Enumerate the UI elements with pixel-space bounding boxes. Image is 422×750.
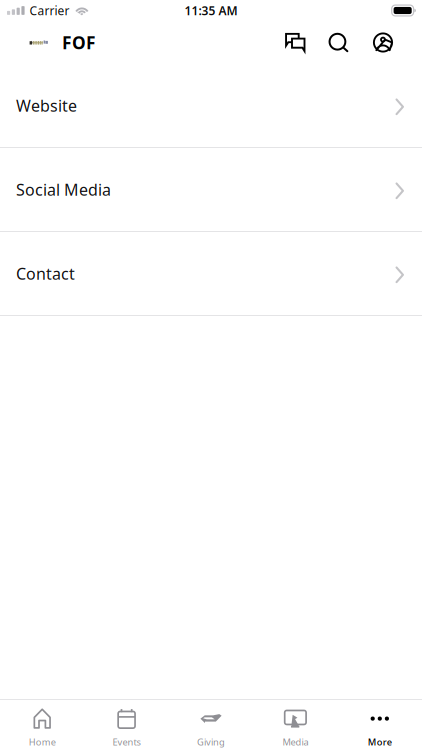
staticText: Events [113,736,141,748]
staticText: Carrier [29,2,69,18]
staticText: 11:35 AM [184,2,237,18]
button[interactable]: Website [0,64,422,148]
staticText: Social Media [16,179,111,200]
button[interactable]: Account [360,21,406,63]
staticText: Media [282,736,308,748]
staticText: More [368,736,392,748]
button[interactable]: Home [0,700,84,750]
button[interactable]: Giving [169,700,253,750]
button[interactable]: Social Media [0,148,422,232]
staticText: Giving [197,736,225,748]
staticText: FOF [62,31,96,54]
button[interactable]: Events [84,700,169,750]
staticText: Home [29,736,56,748]
button[interactable]: Contact [0,232,422,316]
staticText: Contact [16,263,75,284]
button[interactable]: Search [317,21,360,63]
button[interactable]: Media [253,700,338,750]
button[interactable]: More [338,700,422,750]
button[interactable]: Messages [274,21,317,63]
staticText: Website [16,95,77,116]
